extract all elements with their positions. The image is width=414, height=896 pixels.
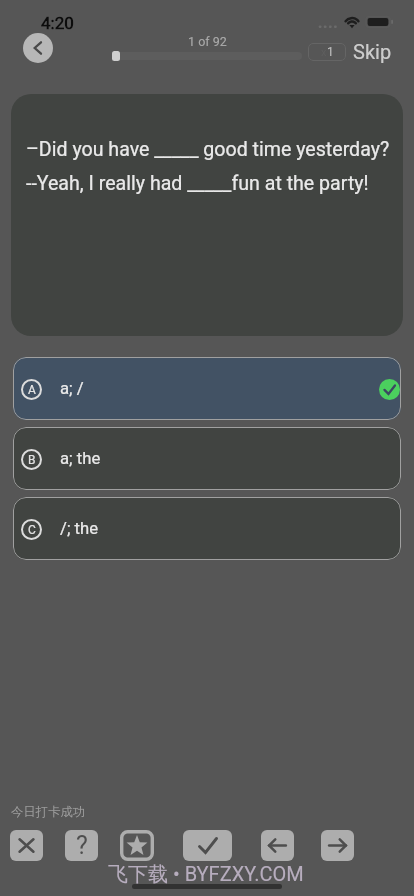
- staticText: 1: [327, 45, 334, 59]
- button[interactable]: Next: [321, 830, 354, 861]
- button[interactable]: A: [13, 357, 401, 420]
- button[interactable]: Favorite: [120, 830, 154, 861]
- staticText: 今日打卡成功: [11, 804, 86, 820]
- staticText: B: [28, 453, 36, 467]
- button[interactable]: Playback speed: [308, 43, 346, 61]
- staticText: a; the: [60, 449, 101, 469]
- staticText: C: [28, 523, 36, 537]
- staticText: ?: [76, 831, 88, 860]
- staticText: A: [28, 383, 36, 397]
- button[interactable]: Back: [23, 33, 53, 63]
- staticText: 1 of 92: [188, 34, 227, 49]
- button[interactable]: C: [13, 497, 401, 560]
- button[interactable]: Previous: [261, 830, 294, 861]
- staticText: a; /: [60, 379, 84, 399]
- staticText: --Yeah, I really had _____fun at the par…: [26, 172, 369, 195]
- staticText: Skip: [353, 40, 392, 63]
- staticText: 飞下载 • BYFZXY.COM: [108, 862, 304, 887]
- staticText: 4:20: [41, 13, 74, 33]
- button[interactable]: B: [13, 427, 401, 490]
- button[interactable]: Check: [183, 830, 232, 861]
- button[interactable]: Skip: [353, 40, 392, 63]
- staticText: –Did you have _____ good time yesterday?: [26, 138, 390, 161]
- button[interactable]: Close: [10, 830, 43, 861]
- button[interactable]: Hint: [65, 830, 98, 861]
- staticText: /; the: [60, 519, 99, 539]
